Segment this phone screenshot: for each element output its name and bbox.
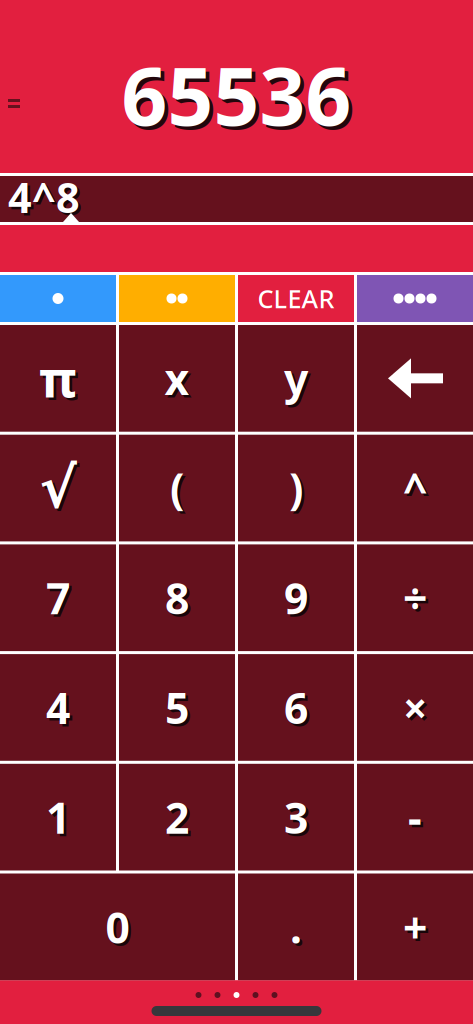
staticText: 65536	[121, 41, 351, 148]
staticText: ÷	[403, 569, 427, 626]
button[interactable]: 2	[119, 764, 235, 870]
staticText: π	[39, 345, 77, 412]
staticText: 9	[284, 569, 308, 626]
button[interactable]: CLEAR	[238, 275, 354, 322]
staticText: 4	[48, 682, 72, 738]
staticText: .	[290, 898, 302, 955]
button[interactable]: ×	[357, 654, 473, 761]
staticText: 1	[48, 791, 72, 848]
staticText: 0	[108, 901, 132, 958]
button[interactable]: 5	[119, 654, 235, 761]
button[interactable]: )	[238, 435, 354, 541]
staticText: x	[167, 352, 192, 409]
staticText: -	[408, 789, 422, 845]
staticText: .	[292, 901, 304, 958]
staticText: CLEAR	[257, 282, 334, 315]
staticText: 6	[286, 682, 310, 738]
button[interactable]: One decimal place	[0, 275, 116, 322]
button[interactable]: +	[357, 873, 473, 980]
button[interactable]: x	[119, 325, 235, 432]
button[interactable]: (	[119, 435, 235, 541]
staticText: 65536	[125, 45, 355, 151]
staticText: 4^8	[8, 170, 80, 224]
staticText: )	[289, 460, 303, 516]
staticText: 3	[286, 791, 310, 848]
button[interactable]: -	[357, 764, 473, 870]
staticText: 0	[105, 898, 129, 955]
staticText: π	[41, 347, 79, 414]
staticText: ^	[403, 460, 427, 516]
staticText: y	[284, 350, 308, 407]
staticText: 5	[165, 679, 189, 736]
staticText: ÷	[405, 572, 429, 629]
staticText: 4^8	[10, 172, 82, 227]
staticText: 6	[284, 679, 308, 736]
staticText: -	[410, 791, 424, 848]
button[interactable]: 4	[0, 654, 116, 761]
button[interactable]: Four decimal places	[357, 275, 473, 322]
staticText: √	[39, 456, 76, 520]
staticText: (	[172, 462, 186, 519]
staticText: (	[170, 460, 184, 516]
staticText: 8	[165, 569, 189, 626]
button[interactable]: y	[238, 325, 354, 432]
button[interactable]: Backspace	[357, 325, 473, 432]
staticText: )	[291, 462, 305, 519]
button[interactable]: π	[0, 325, 116, 432]
staticText: ^	[405, 462, 429, 519]
button[interactable]: 8	[119, 544, 235, 651]
staticText: x	[164, 350, 189, 407]
staticText: 3	[284, 789, 308, 845]
staticText: 1	[46, 789, 70, 845]
staticText: 7	[46, 569, 70, 626]
button[interactable]: √	[0, 435, 116, 541]
button[interactable]: Two decimal places	[119, 275, 235, 322]
staticText: 8	[167, 572, 191, 629]
staticText: +	[405, 901, 429, 958]
button[interactable]: ÷	[357, 544, 473, 651]
staticText: ×	[405, 682, 429, 738]
staticText: 4	[46, 679, 70, 736]
button[interactable]: 6	[238, 654, 354, 761]
button[interactable]: 7	[0, 544, 116, 651]
staticText: √	[42, 459, 79, 522]
button[interactable]: 9	[238, 544, 354, 651]
staticText: 2	[165, 789, 189, 845]
button[interactable]: .	[238, 873, 354, 980]
staticText: 2	[167, 791, 191, 848]
staticText: y	[286, 352, 310, 409]
staticText: 9	[286, 572, 310, 629]
staticText: ×	[403, 679, 427, 736]
staticText: 7	[48, 572, 72, 629]
button[interactable]: 0	[0, 873, 235, 980]
button[interactable]: ^	[357, 435, 473, 541]
button[interactable]: 1	[0, 764, 116, 870]
staticText: 5	[167, 682, 191, 738]
staticText: +	[403, 898, 427, 955]
button[interactable]: 3	[238, 764, 354, 870]
